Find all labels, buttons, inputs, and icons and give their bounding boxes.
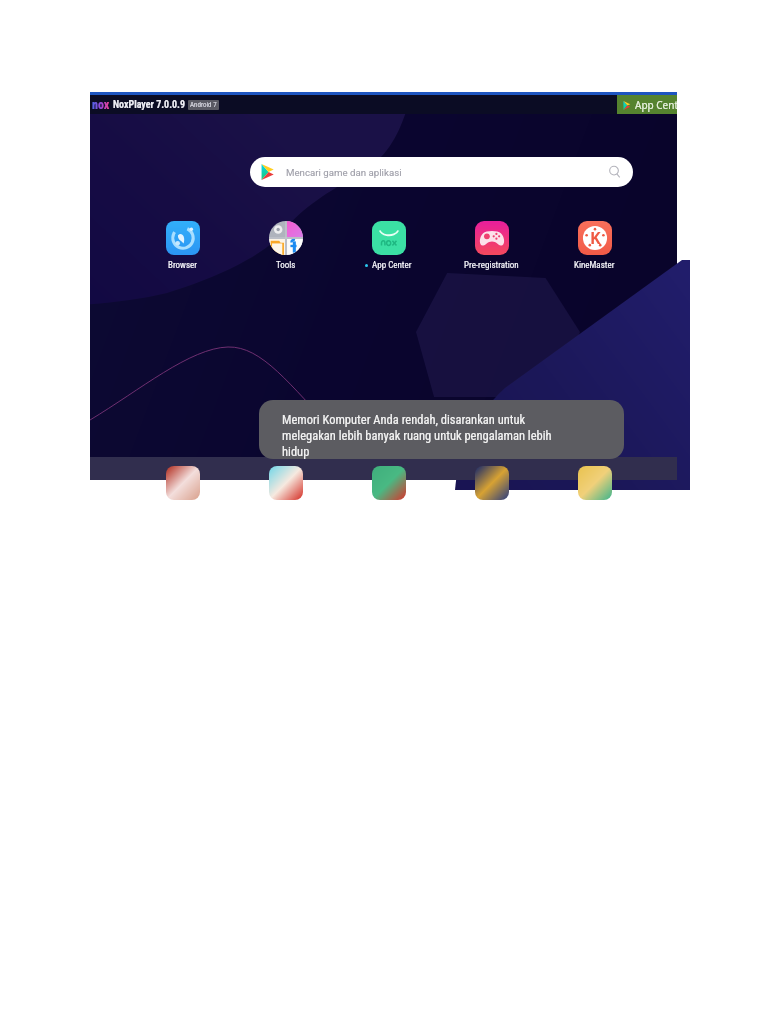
staticText: Pre-registration [464,260,519,271]
button[interactable] [166,466,200,500]
staticText: Browser [168,260,197,271]
staticText: Android 7 [190,101,217,109]
staticText: Tools [276,260,296,271]
button[interactable] [578,466,612,500]
staticText: K [590,227,601,249]
button[interactable]: App Center [337,221,440,271]
staticText: App Center [372,260,412,271]
staticText: KineMaster [574,260,615,271]
button[interactable] [372,466,406,500]
button[interactable]: Mencari game dan aplikasi [250,157,633,187]
button[interactable] [475,466,509,500]
button[interactable]: Tools [234,221,337,271]
button[interactable]: Browser [131,221,234,271]
button[interactable]: App Center [617,95,677,114]
staticText: Memori Komputer Anda rendah, disarankan … [282,412,578,459]
button[interactable]: Memori Komputer Anda rendah, disarankan … [259,400,624,459]
staticText: NoxPlayer 7.0.0.9 [113,99,186,111]
button[interactable]: Pre-registration [440,221,543,271]
other: Search [608,165,622,179]
staticText: App Center [635,98,677,112]
staticText: nox [92,98,110,112]
button[interactable]: K [543,221,646,271]
staticText: Mencari game dan aplikasi [286,167,402,178]
button[interactable] [269,466,303,500]
